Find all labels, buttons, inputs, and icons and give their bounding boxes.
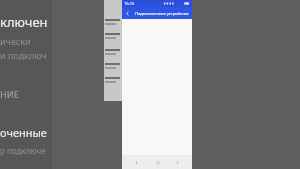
button[interactable]: Главный экран: [152, 157, 163, 168]
button[interactable]: [104, 48, 122, 56]
button[interactable]: Назад: [122, 8, 132, 18]
staticText: ически откл: [0, 35, 52, 47]
staticText: 16:16: [124, 1, 135, 6]
button[interactable]: [104, 62, 122, 70]
staticText: ключение: [0, 13, 52, 31]
button[interactable]: [104, 18, 122, 26]
button[interactable]: Назад: [131, 157, 142, 168]
button[interactable]: Последние приложения: [172, 157, 183, 168]
staticText: и подключ: [0, 49, 47, 61]
staticText: Подключенные устройства: [135, 11, 189, 16]
staticText: р подключе: [0, 145, 46, 156]
staticText: оченные у: [0, 125, 52, 140]
button[interactable]: [104, 32, 122, 40]
button[interactable]: [104, 76, 122, 84]
staticText: НИЕ УСТРОЙ: [0, 88, 52, 100]
